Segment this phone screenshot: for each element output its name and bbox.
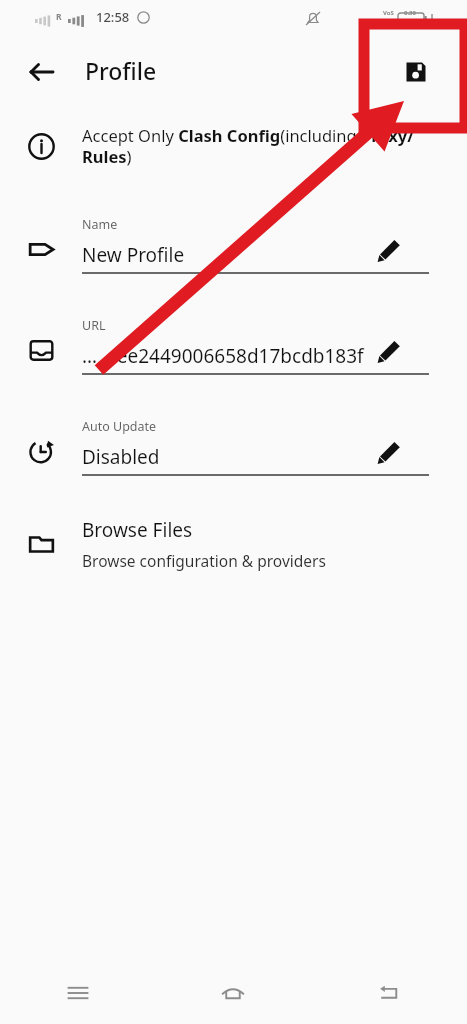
button[interactable]: Back [18, 48, 66, 96]
button[interactable]: Edit URL [374, 336, 404, 366]
staticText: New Profile [82, 242, 185, 268]
button[interactable]: Browse Files [0, 504, 467, 584]
staticText: VoS [383, 9, 394, 17]
staticText: Browse Files [82, 517, 193, 543]
staticText: 0.30 [404, 9, 416, 17]
button[interactable]: Accept Only Clash Config(including Proxy… [0, 112, 467, 180]
staticText: 12:58 [96, 8, 130, 26]
staticText: Browse configuration & providers [82, 550, 326, 571]
button[interactable]: Home [155, 962, 311, 1024]
staticText: … ee2449006658d17bcdb183f [82, 343, 364, 369]
button[interactable]: Name [0, 208, 467, 274]
button[interactable]: Back [311, 962, 467, 1024]
staticText: Profile [85, 55, 157, 86]
button[interactable]: Save [390, 46, 442, 98]
staticText: Auto Update [82, 418, 157, 435]
staticText: Disabled [82, 444, 160, 470]
staticText: LTE2 [381, 17, 395, 25]
button[interactable]: URL [0, 309, 467, 375]
staticText: URL [82, 317, 106, 334]
staticText: KB/s [403, 17, 417, 25]
button[interactable]: Edit Name [374, 235, 404, 265]
staticText: Accept Only Clash Config(including Proxy… [82, 124, 422, 168]
staticText: R [56, 11, 62, 23]
button[interactable]: Edit Auto Update [374, 437, 404, 467]
button[interactable]: Auto Update [0, 410, 467, 476]
staticText: Name [82, 216, 118, 233]
button[interactable]: Recents [0, 962, 155, 1024]
